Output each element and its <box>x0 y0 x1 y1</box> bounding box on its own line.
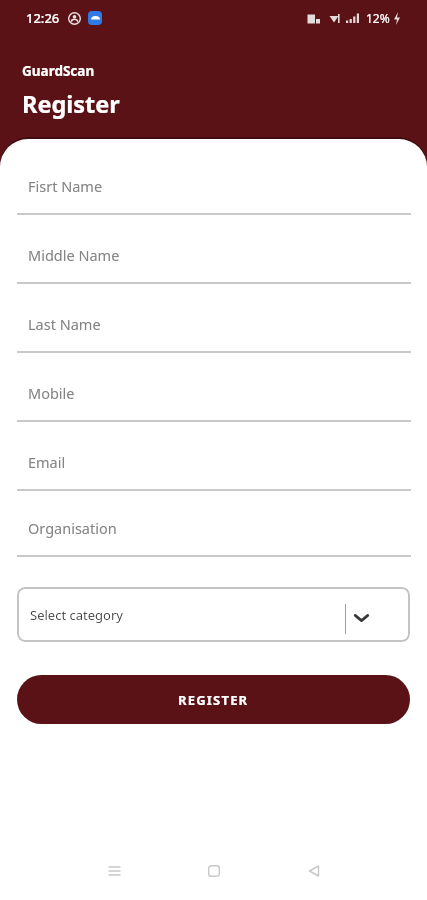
staticText: 12% <box>366 10 390 26</box>
button[interactable]: Mobile <box>0 353 427 422</box>
button[interactable] <box>164 853 264 889</box>
button[interactable]: Organisation <box>0 491 427 557</box>
staticText: Mobile <box>28 383 75 403</box>
button[interactable]: Email <box>0 422 427 491</box>
button[interactable]: Last Name <box>0 284 427 353</box>
staticText: GuardScan <box>22 62 95 80</box>
staticText: Last Name <box>28 314 101 334</box>
staticText: Middle Name <box>28 245 120 265</box>
button[interactable]: Fisrt Name <box>0 146 427 215</box>
staticText: Select category <box>30 606 123 624</box>
staticText: Organisation <box>28 518 117 538</box>
staticText: Register <box>22 88 120 120</box>
staticText: REGISTER <box>178 691 249 709</box>
staticText: 12:26 <box>26 9 60 27</box>
button[interactable]: Middle Name <box>0 215 427 284</box>
button[interactable]: Select category <box>17 587 410 642</box>
button[interactable] <box>264 853 364 889</box>
button[interactable] <box>64 853 164 889</box>
staticText: Fisrt Name <box>28 176 103 196</box>
button[interactable]: REGISTER <box>17 675 410 724</box>
staticText: Email <box>28 452 66 472</box>
